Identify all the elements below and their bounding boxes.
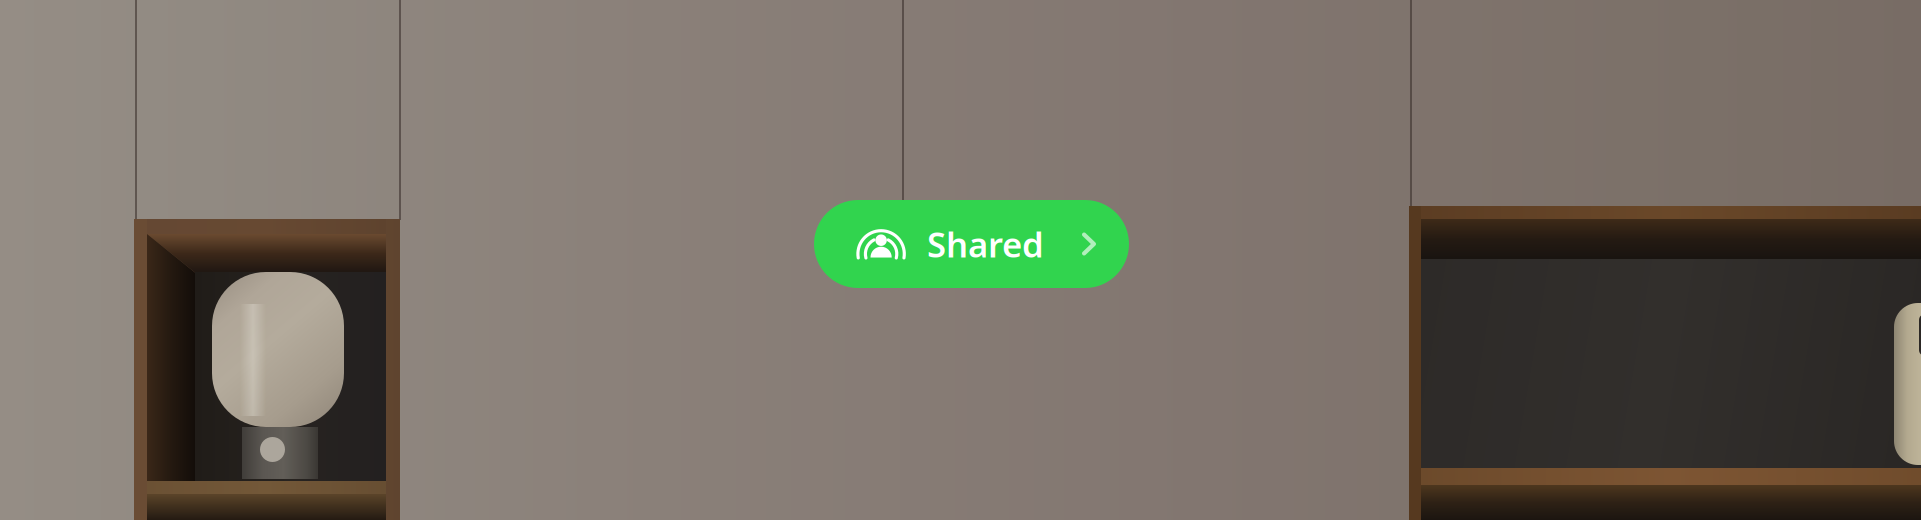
staticText: Shared [927, 221, 1044, 267]
button[interactable]: Shared [814, 200, 1129, 288]
